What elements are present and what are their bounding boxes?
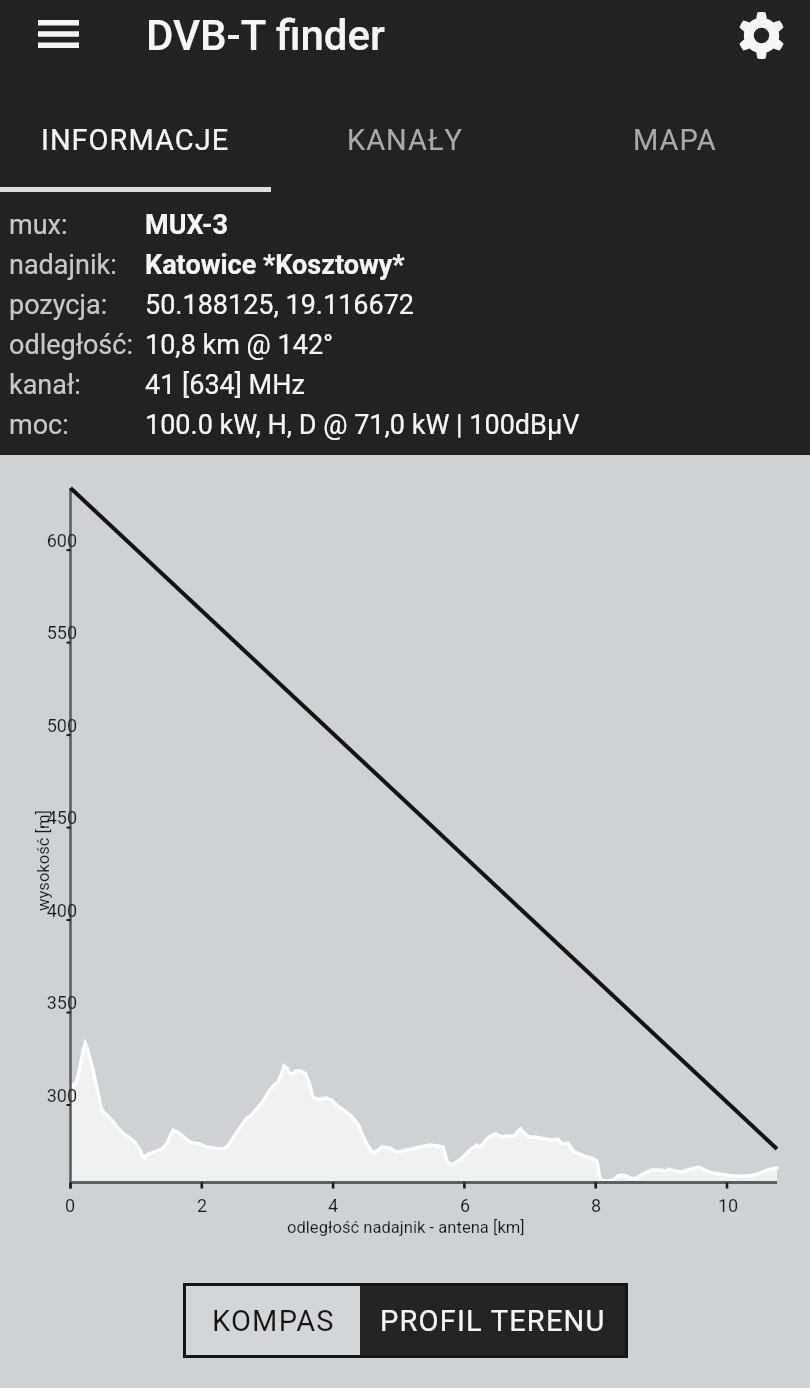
staticText: 550: [17, 622, 77, 643]
button[interactable]: INFORMACJE: [0, 87, 270, 195]
staticText: DVB-T finder: [146, 11, 385, 60]
staticText: KANAŁY: [347, 123, 464, 157]
staticText: nadajnik:: [9, 249, 117, 281]
staticText: kanał:: [9, 369, 81, 401]
staticText: 350: [17, 992, 77, 1013]
staticText: PROFIL TERENU: [380, 1304, 606, 1338]
staticText: MAPA: [633, 123, 717, 157]
staticText: 41 [634] MHz: [145, 369, 305, 401]
staticText: wysokość [m]: [34, 810, 53, 911]
staticText: odległość nadajnik - antena [km]: [287, 1218, 525, 1237]
staticText: 500: [17, 715, 77, 736]
button[interactable]: KOMPAS: [186, 1286, 360, 1355]
staticText: 4: [303, 1195, 363, 1216]
button[interactable]: MAPA: [540, 87, 810, 195]
staticText: INFORMACJE: [41, 123, 230, 157]
staticText: odległość:: [9, 329, 133, 361]
staticText: 6: [435, 1195, 495, 1216]
staticText: mux:: [9, 209, 68, 241]
button[interactable]: KANAŁY: [270, 87, 540, 195]
staticText: 300: [17, 1085, 77, 1106]
staticText: 50.188125, 19.116672: [145, 289, 415, 321]
staticText: 100.0 kW, H, D @ 71,0 kW | 100dBµV: [145, 409, 580, 441]
button[interactable]: Settings: [725, 0, 797, 71]
staticText: 600: [17, 530, 77, 551]
staticText: pozycja:: [9, 289, 108, 321]
staticText: 0: [40, 1195, 100, 1216]
staticText: moc:: [9, 409, 69, 441]
button[interactable]: PROFIL TERENU: [360, 1286, 625, 1355]
button[interactable]: Open navigation drawer: [22, 0, 94, 70]
staticText: 8: [566, 1195, 626, 1216]
staticText: KOMPAS: [212, 1304, 335, 1338]
staticText: 10: [698, 1195, 758, 1216]
staticText: MUX-3: [145, 209, 229, 241]
staticText: Katowice *Kosztowy*: [145, 249, 405, 281]
staticText: 10,8 km @ 142°: [145, 329, 334, 361]
staticText: 2: [172, 1195, 232, 1216]
staticText: 400: [17, 900, 77, 921]
staticText: 450: [17, 807, 77, 828]
